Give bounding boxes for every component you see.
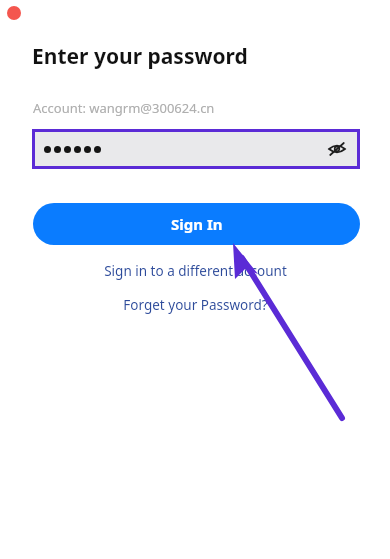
button[interactable]: Show password — [32, 129, 360, 169]
button[interactable]: Forget your Password? — [0, 296, 390, 314]
staticText: Enter your password — [32, 42, 248, 71]
staticText: Sign in to a different account — [104, 262, 287, 280]
button[interactable]: Sign In — [33, 203, 360, 245]
staticText: Account: wangrm@300624.cn — [33, 99, 215, 117]
staticText: Forget your Password? — [123, 296, 268, 314]
staticText: Sign In — [171, 214, 223, 234]
button[interactable]: Sign in to a different account — [0, 262, 390, 280]
button[interactable]: Show password — [326, 138, 348, 160]
